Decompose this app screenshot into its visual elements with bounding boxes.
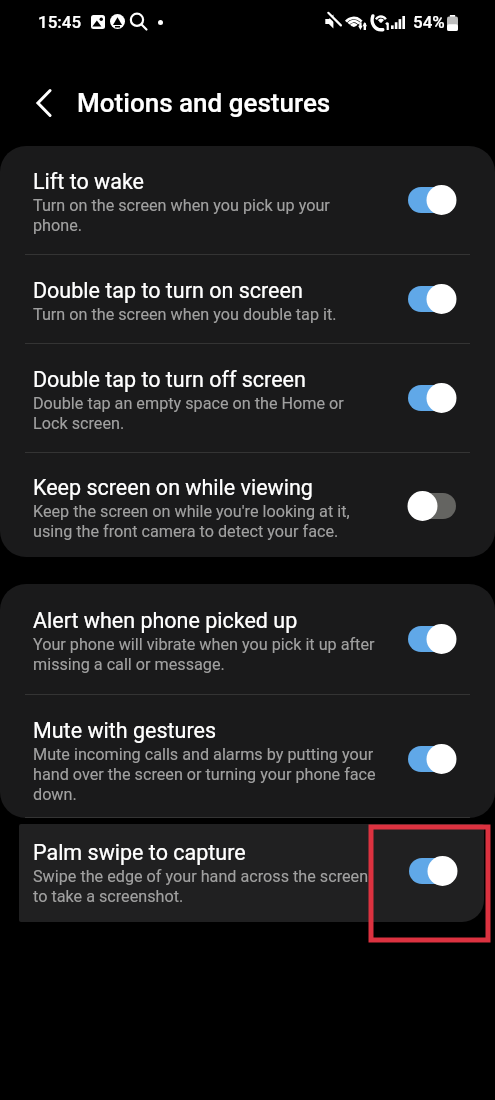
button[interactable]: Switch off	[401, 486, 463, 526]
staticText: Lift to wake	[33, 165, 145, 195]
button[interactable]: Navigate up	[20, 79, 68, 127]
button[interactable]: Switch on	[401, 739, 463, 779]
staticText: Your phone will vibrate when you pick it…	[33, 634, 376, 674]
button[interactable]: Switch on	[401, 180, 463, 220]
staticText: Palm swipe to capture	[33, 836, 246, 866]
staticText: Keep the screen on while you're looking …	[33, 501, 376, 541]
staticText: Swipe the edge of your hand across the s…	[33, 866, 376, 906]
staticText: 15:45	[38, 12, 82, 32]
staticText: Alert when phone picked up	[33, 604, 298, 634]
staticText: Double tap an empty space on the Home or…	[33, 393, 376, 433]
staticText: Keep screen on while viewing	[33, 471, 313, 501]
staticText: Turn on the screen when you double tap i…	[33, 304, 337, 324]
button[interactable]: Mute with gestures	[0, 695, 495, 817]
button[interactable]: Switch on	[401, 279, 463, 319]
staticText: 54%	[413, 12, 445, 32]
staticText: Double tap to turn off screen	[33, 363, 306, 393]
button[interactable]: Keep screen on while viewing	[0, 453, 495, 557]
button[interactable]: Switch on	[402, 851, 464, 891]
staticText: Mute incoming calls and alarms by puttin…	[33, 744, 376, 804]
button[interactable]: Switch on	[401, 378, 463, 418]
staticText: Turn on the screen when you pick up your…	[33, 195, 376, 235]
button[interactable]: Double tap to turn on screen	[0, 255, 495, 343]
staticText: Double tap to turn on screen	[33, 274, 303, 304]
button[interactable]: Lift to wake	[0, 146, 495, 254]
button[interactable]: Palm swipe to capture	[19, 824, 484, 922]
button[interactable]: Alert when phone picked up	[0, 584, 495, 694]
staticText: Motions and gestures	[77, 88, 331, 118]
button[interactable]: Switch on	[401, 619, 463, 659]
button[interactable]: Double tap to turn off screen	[0, 344, 495, 452]
staticText: Mute with gestures	[33, 714, 217, 744]
